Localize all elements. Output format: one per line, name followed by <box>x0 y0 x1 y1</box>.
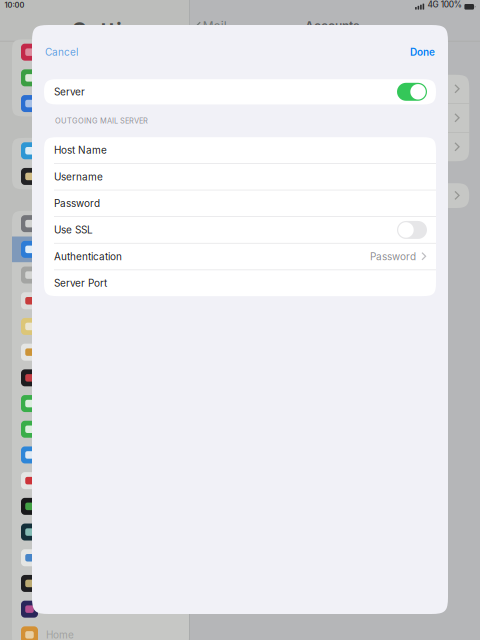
staticText: 10:00 <box>5 1 25 10</box>
staticText: Settings <box>72 17 162 45</box>
button[interactable]: Mail <box>12 236 189 262</box>
staticText: Server <box>54 86 85 98</box>
staticText: Mail <box>203 19 227 33</box>
staticText: Calendar <box>46 295 89 307</box>
button[interactable]: Shortcuts <box>12 571 189 596</box>
button[interactable]: Freeform <box>12 365 189 391</box>
staticText: 100% <box>441 0 462 10</box>
staticText: OUTGOING MAIL SERVER <box>55 116 148 125</box>
button[interactable]: Screen Time <box>12 91 189 116</box>
button[interactable]: Stocks <box>12 493 189 519</box>
button[interactable]: Account <box>201 104 469 132</box>
staticText: Password <box>370 250 416 263</box>
button[interactable]: Done <box>408 40 437 64</box>
button[interactable]: Calendar <box>12 288 189 314</box>
staticText: Authentication <box>54 250 122 263</box>
button[interactable]: Notes <box>12 314 189 339</box>
button[interactable]: Account <box>201 183 469 208</box>
staticText: Done <box>410 46 435 58</box>
staticText: Server Port <box>54 277 107 289</box>
button[interactable]: Account <box>201 75 469 103</box>
staticText: Shortcuts <box>46 603 91 615</box>
button[interactable]: Sounds <box>12 39 189 65</box>
button[interactable]: Voice Memos <box>12 391 189 416</box>
button[interactable]: Phone <box>12 416 189 442</box>
button[interactable]: Shortcuts <box>12 596 189 622</box>
button[interactable]: Home <box>12 622 189 640</box>
button[interactable]: Safari <box>12 442 189 468</box>
button[interactable]: Mail <box>196 19 227 33</box>
button[interactable]: Maps <box>12 545 189 571</box>
button[interactable]: Authentication <box>44 244 436 269</box>
staticText: Host Name <box>54 144 107 156</box>
staticText: Screen Time <box>46 97 106 110</box>
button[interactable]: Server Port <box>44 270 436 296</box>
staticText: Focus <box>46 72 75 84</box>
button[interactable]: Translate <box>12 519 189 545</box>
button[interactable]: Server <box>44 79 436 104</box>
staticText: Contacts <box>46 269 88 281</box>
button[interactable]: Password <box>44 190 436 216</box>
button[interactable]: Reminders <box>12 339 189 365</box>
staticText: Cancel <box>45 46 78 58</box>
button[interactable]: Host Name <box>44 137 436 163</box>
button[interactable]: Username <box>44 164 436 190</box>
button[interactable]: Contacts <box>12 262 189 288</box>
button[interactable]: Wallet <box>12 164 189 189</box>
button[interactable]: Cancel <box>43 40 80 64</box>
staticText: Wallet <box>46 170 74 182</box>
button[interactable]: App Store <box>12 138 189 164</box>
staticText: Home <box>46 629 74 640</box>
staticText: Mail <box>46 243 65 255</box>
staticText: 4G <box>427 0 438 10</box>
staticText: Use SSL <box>54 224 93 236</box>
staticText: Username <box>54 171 103 183</box>
button[interactable]: Use SSL <box>44 217 436 243</box>
button[interactable]: Focus <box>12 65 189 91</box>
button[interactable]: Account <box>201 133 469 161</box>
staticText: Password <box>54 197 100 209</box>
button[interactable]: Passwords <box>12 211 189 236</box>
button[interactable]: News <box>12 468 189 493</box>
staticText: Accounts <box>305 19 360 33</box>
staticText: Sounds <box>46 46 81 58</box>
staticText: Passwords <box>46 218 97 230</box>
staticText: App Store <box>46 145 93 157</box>
